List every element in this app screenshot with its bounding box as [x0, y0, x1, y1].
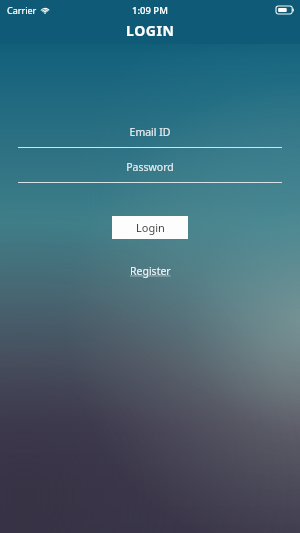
staticText: Carrier — [7, 4, 37, 16]
staticText: Email ID — [18, 125, 282, 139]
staticText: LOGIN — [126, 21, 175, 40]
staticText: Password — [18, 160, 282, 174]
button[interactable]: Email ID — [18, 125, 282, 148]
staticText: Login — [136, 220, 165, 235]
staticText: 1:09 PM — [132, 4, 168, 17]
staticText: Register — [130, 264, 171, 278]
button[interactable]: Register — [130, 264, 171, 278]
button[interactable]: Password — [18, 160, 282, 183]
button[interactable]: Login — [112, 216, 188, 239]
